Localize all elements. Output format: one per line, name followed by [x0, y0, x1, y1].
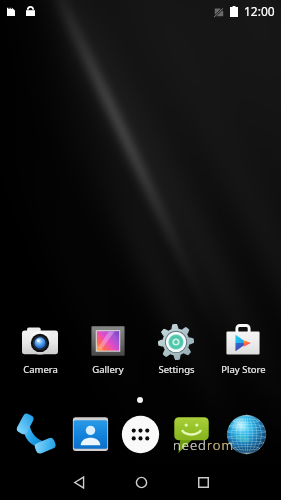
staticText: rom: [207, 436, 235, 454]
button[interactable]: Back: [61, 464, 97, 500]
staticText: 12:00: [244, 3, 275, 19]
button[interactable]: Apps: [117, 411, 163, 457]
button[interactable]: Browser: [223, 411, 269, 457]
button[interactable]: Camera: [8, 324, 72, 376]
staticText: need: [173, 436, 207, 454]
staticText: Camera: [23, 363, 58, 376]
button[interactable]: Phone: [12, 411, 58, 457]
button[interactable]: Play Store: [211, 324, 275, 376]
button[interactable]: Home: [123, 464, 159, 500]
button[interactable]: Gallery: [76, 324, 140, 376]
button[interactable]: Messaging: [168, 411, 214, 457]
button[interactable]: Contacts: [67, 411, 113, 457]
staticText: Gallery: [92, 363, 124, 376]
button[interactable]: Settings: [144, 324, 208, 376]
button[interactable]: Recents: [185, 464, 221, 500]
staticText: Play Store: [221, 363, 266, 376]
staticText: Settings: [158, 363, 195, 376]
